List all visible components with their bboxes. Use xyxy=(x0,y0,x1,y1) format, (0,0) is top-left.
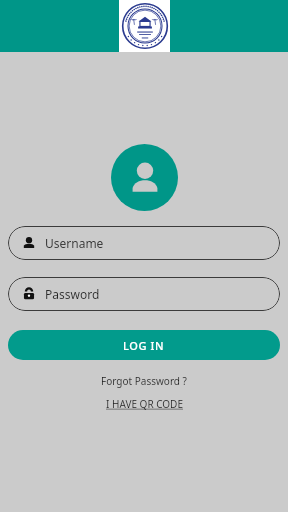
button[interactable]: I HAVE QR CODE xyxy=(100,395,189,413)
staticText: Forgot Password ? xyxy=(101,374,187,388)
staticText: I HAVE QR CODE xyxy=(106,397,183,411)
button[interactable]: Forgot Password ? xyxy=(95,372,193,390)
staticText: Password xyxy=(45,286,100,302)
button[interactable]: Username xyxy=(8,226,280,260)
staticText: Username xyxy=(45,235,104,251)
button[interactable]: LOG IN xyxy=(8,330,280,360)
button[interactable]: Password xyxy=(8,277,280,311)
staticText: LOG IN xyxy=(123,338,165,353)
